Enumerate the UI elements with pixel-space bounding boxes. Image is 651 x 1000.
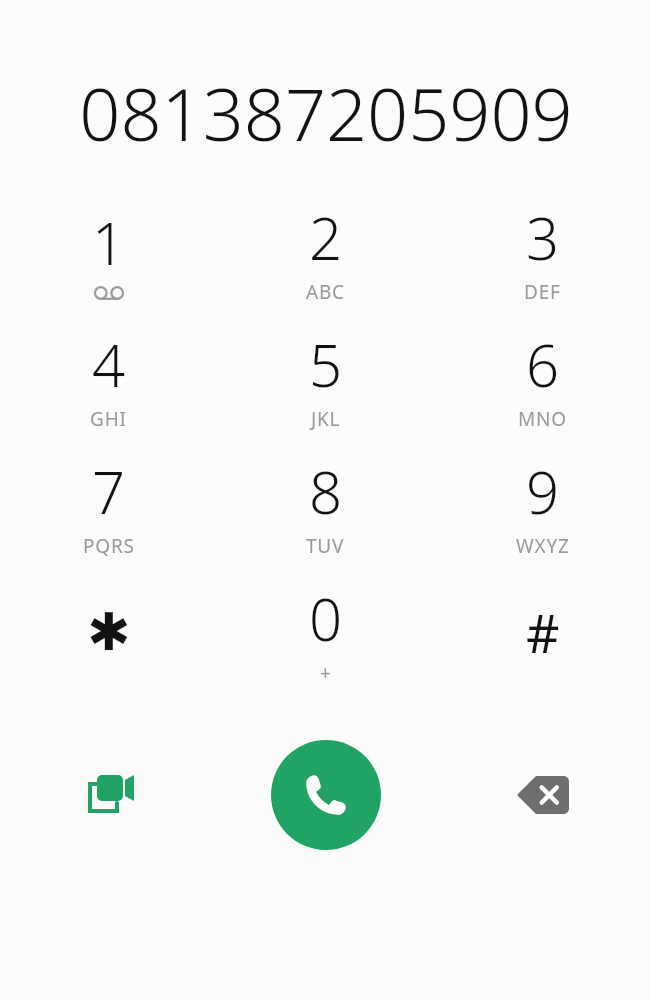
staticText: + bbox=[320, 660, 332, 686]
staticText: 4 bbox=[92, 325, 126, 404]
staticText: MNO bbox=[518, 406, 567, 432]
button[interactable]: 0 bbox=[217, 579, 434, 686]
staticText: 2 bbox=[309, 198, 343, 277]
staticText: 6 bbox=[526, 325, 560, 404]
staticText: 1 bbox=[92, 203, 126, 282]
staticText: # bbox=[526, 597, 560, 668]
button[interactable]: # bbox=[434, 579, 651, 686]
button[interactable]: Call bbox=[271, 740, 381, 850]
staticText: WXYZ bbox=[516, 533, 570, 559]
staticText: GHI bbox=[90, 406, 127, 432]
staticText: 0 bbox=[309, 579, 343, 658]
staticText: 5 bbox=[309, 325, 343, 404]
staticText: PQRS bbox=[83, 533, 135, 559]
button[interactable]: 2 bbox=[217, 198, 434, 305]
button[interactable]: Backspace bbox=[434, 730, 651, 860]
staticText: 9 bbox=[526, 452, 560, 531]
staticText: JKL bbox=[311, 406, 341, 432]
button[interactable]: 4 bbox=[0, 325, 217, 432]
button[interactable]: 1 bbox=[0, 198, 217, 305]
button[interactable]: Video call bbox=[0, 730, 217, 860]
button[interactable]: 8 bbox=[217, 452, 434, 559]
button[interactable]: ✱ bbox=[0, 579, 217, 686]
button[interactable]: 3 bbox=[434, 198, 651, 305]
button[interactable]: 7 bbox=[0, 452, 217, 559]
button[interactable]: 9 bbox=[434, 452, 651, 559]
staticText: ✱ bbox=[87, 602, 131, 663]
staticText: ABC bbox=[306, 279, 345, 305]
button[interactable]: 5 bbox=[217, 325, 434, 432]
staticText: DEF bbox=[524, 279, 561, 305]
staticText: 8 bbox=[309, 452, 343, 531]
staticText: TUV bbox=[306, 533, 345, 559]
button[interactable]: 6 bbox=[434, 325, 651, 432]
staticText: 7 bbox=[92, 452, 126, 531]
staticText: 081387205909 bbox=[79, 64, 573, 160]
staticText: 3 bbox=[526, 198, 560, 277]
